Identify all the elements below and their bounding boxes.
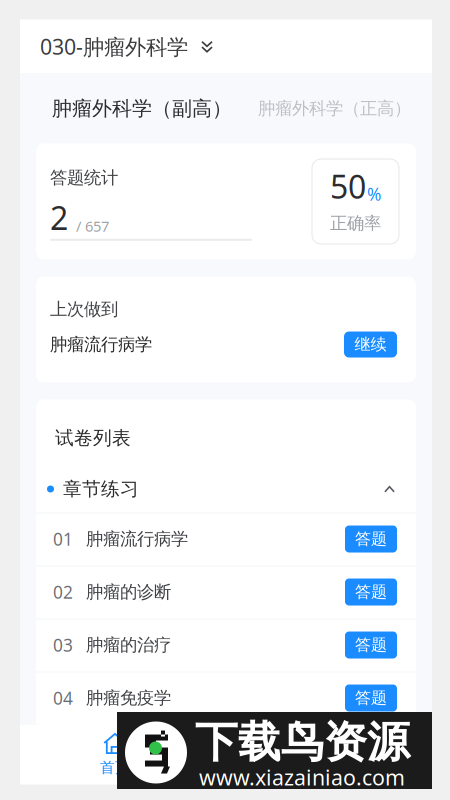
- button[interactable]: 切换科目: [188, 26, 227, 66]
- button[interactable]: 02: [36, 565, 416, 618]
- staticText: 肿瘤的治疗: [86, 634, 171, 656]
- button[interactable]: 首页: [20, 724, 210, 784]
- staticText: 试卷列表: [55, 426, 131, 449]
- staticText: 继续: [354, 335, 386, 354]
- staticText: www.xiazainiao.com: [199, 763, 405, 791]
- staticText: 02: [53, 580, 73, 603]
- staticText: 答题统计: [50, 167, 118, 188]
- staticText: 肿瘤流行病学: [86, 528, 188, 550]
- staticText: 03: [53, 633, 73, 656]
- staticText: / 657: [76, 216, 109, 236]
- staticText: 01: [53, 527, 73, 550]
- staticText: 肿瘤外科学（正高）: [258, 98, 411, 119]
- button[interactable]: 肿瘤外科学（正高）: [258, 73, 418, 143]
- staticText: %: [367, 182, 381, 205]
- button[interactable]: 04: [36, 671, 416, 724]
- staticText: 上次做到: [50, 298, 118, 320]
- button[interactable]: 03: [36, 618, 416, 671]
- staticText: 章节练习: [63, 477, 139, 500]
- button[interactable]: 继续: [344, 331, 397, 357]
- staticText: 答题: [355, 582, 387, 602]
- staticText: 肿瘤免疫学: [86, 687, 171, 709]
- button[interactable]: 01: [36, 512, 416, 565]
- staticText: 答题: [355, 635, 387, 655]
- staticText: 答题: [355, 688, 387, 708]
- staticText: 50: [330, 165, 366, 207]
- staticText: 首页: [100, 758, 130, 776]
- staticText: 肿瘤的诊断: [86, 581, 171, 603]
- staticText: 正确率: [330, 212, 381, 234]
- button[interactable]: 肿瘤外科学（副高）: [20, 73, 258, 143]
- staticText: 肿瘤流行病学: [50, 334, 152, 355]
- staticText: 答题: [355, 529, 387, 549]
- staticText: 04: [53, 686, 73, 709]
- staticText: 下载鸟资源: [195, 716, 410, 768]
- staticText: 2: [50, 196, 68, 239]
- button[interactable]: 章节练习: [36, 465, 416, 512]
- staticText: 030-肿瘤外科学: [40, 32, 188, 61]
- staticText: 肿瘤外科学（副高）: [52, 96, 232, 121]
